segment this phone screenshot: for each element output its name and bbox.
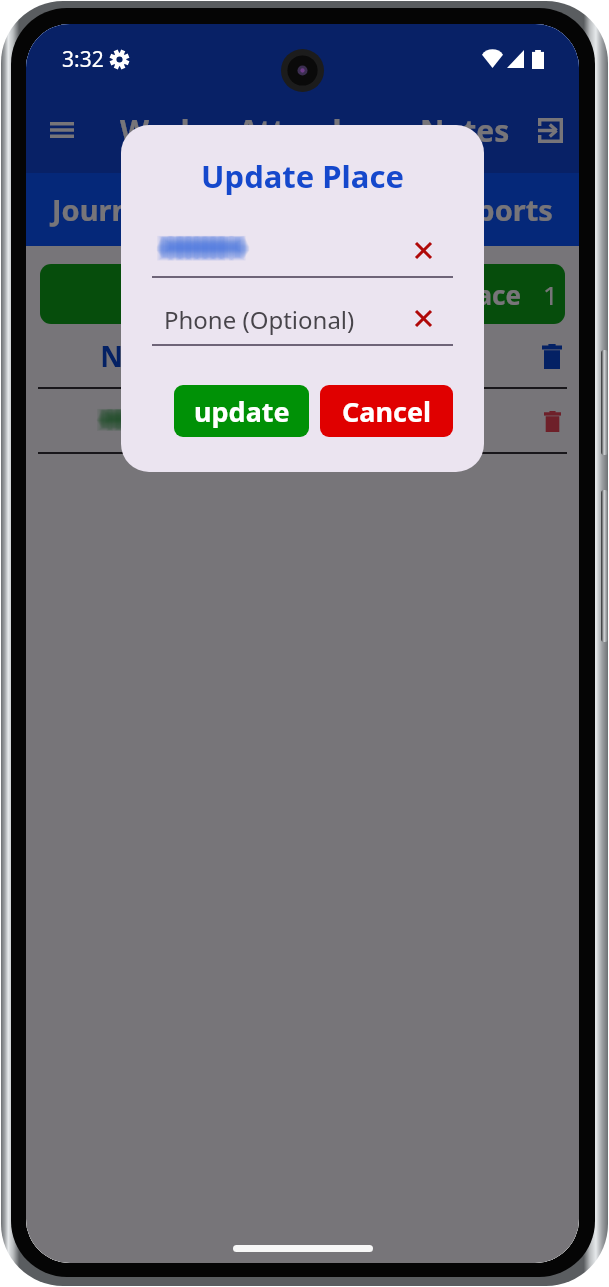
staticText: Phone (Optional) xyxy=(164,303,419,336)
staticText: Name xyxy=(26,337,388,375)
button[interactable]: Delete xyxy=(26,389,579,452)
staticText: 3:32 xyxy=(62,45,104,74)
staticText: Worker Attendance Notes xyxy=(120,110,529,151)
button[interactable]: update xyxy=(174,385,309,437)
button[interactable]: Clear xyxy=(406,233,440,267)
button[interactable]: Logout xyxy=(529,109,571,151)
button[interactable]: Reports xyxy=(422,173,571,246)
button[interactable]: Delete xyxy=(532,336,572,376)
button[interactable]: Name xyxy=(26,324,579,387)
staticText: Journal xyxy=(52,190,157,229)
button[interactable]: Menu xyxy=(41,109,83,151)
staticText: 1 xyxy=(543,277,558,312)
button[interactable]: Add new Place xyxy=(40,264,565,324)
staticText: Reports xyxy=(440,190,553,229)
button[interactable]: Clear xyxy=(406,301,440,335)
button[interactable]: Delete xyxy=(532,401,572,441)
button[interactable]: Cancel xyxy=(320,385,453,437)
staticText: Cancel xyxy=(342,393,432,430)
staticText: Add new Place xyxy=(64,277,521,312)
staticText: Update Place xyxy=(121,155,484,197)
button[interactable]: Journal xyxy=(34,173,175,246)
staticText: update xyxy=(194,393,290,430)
